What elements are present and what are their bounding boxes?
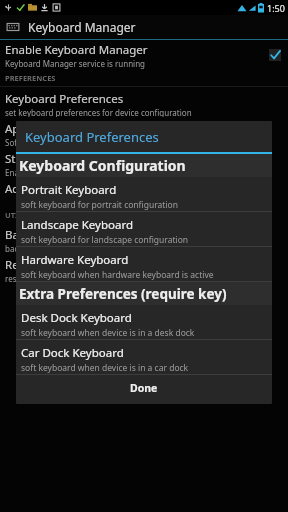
- staticText: Restore: [5, 257, 47, 273]
- other: Enable Keyboard Manager checkbox: [269, 49, 281, 61]
- staticText: Advanced: [5, 181, 58, 197]
- button[interactable]: Backup: [0, 223, 288, 253]
- staticText: Desk Dock Keyboard: [21, 310, 132, 326]
- staticText: Appearance: [5, 121, 70, 137]
- button[interactable]: Keyboard Preferences: [0, 87, 288, 117]
- staticText: backup keyboard settings: [5, 243, 102, 253]
- button[interactable]: Hardware Keyboard: [16, 247, 272, 281]
- staticText: Enable Keyboard Manager: [5, 42, 148, 58]
- staticText: Soft keyboard appearance: [5, 137, 104, 147]
- staticText: soft keyboard when device is in a desk d…: [21, 327, 195, 339]
- staticText: restore keyboard settings: [5, 273, 101, 283]
- staticText: Backup: [5, 227, 45, 243]
- button[interactable]: Advanced: [0, 177, 288, 207]
- staticText: soft keyboard for portrait configuration: [21, 199, 178, 211]
- staticText: set keyboard preferences for device conf…: [5, 107, 192, 117]
- staticText: PREFERENCES: [5, 73, 56, 83]
- staticText: UTILITIES: [5, 210, 41, 220]
- staticText: Keyboard Preferences: [25, 128, 159, 146]
- staticText: Portrait Keyboard: [21, 182, 117, 198]
- staticText: Extra Preferences (require key): [19, 285, 227, 303]
- button[interactable]: Restore: [0, 253, 288, 283]
- button[interactable]: Landscape Keyboard: [16, 212, 272, 246]
- button[interactable]: Desk Dock Keyboard: [16, 305, 272, 339]
- staticText: soft keyboard when hardware keyboard is …: [21, 269, 214, 281]
- staticText: soft keyboard when device is in a car do…: [21, 362, 189, 374]
- staticText: Done: [130, 381, 158, 395]
- button[interactable]: Portrait Keyboard: [16, 177, 272, 211]
- staticText: Keyboard Configuration: [19, 156, 186, 175]
- staticText: Keyboard Manager: [28, 19, 136, 35]
- staticText: Status: [5, 151, 39, 167]
- staticText: Car Dock Keyboard: [21, 345, 124, 361]
- button[interactable]: Car Dock Keyboard: [16, 340, 272, 374]
- staticText: Keyboard Preferences: [5, 91, 124, 107]
- staticText: 1:50: [267, 2, 285, 14]
- button[interactable]: Status: [0, 147, 288, 177]
- button[interactable]: Appearance: [0, 117, 288, 147]
- button[interactable]: Enable Keyboard Manager: [0, 40, 288, 70]
- staticText: Enable status notification: [5, 167, 101, 177]
- other: App icon: [6, 20, 20, 34]
- staticText: Landscape Keyboard: [21, 217, 133, 233]
- staticText: Keyboard Manager service is running: [5, 58, 146, 69]
- staticText: Hardware Keyboard: [21, 252, 129, 268]
- staticText: soft keyboard for landscape configuratio…: [21, 234, 189, 246]
- button[interactable]: Done: [16, 375, 272, 401]
